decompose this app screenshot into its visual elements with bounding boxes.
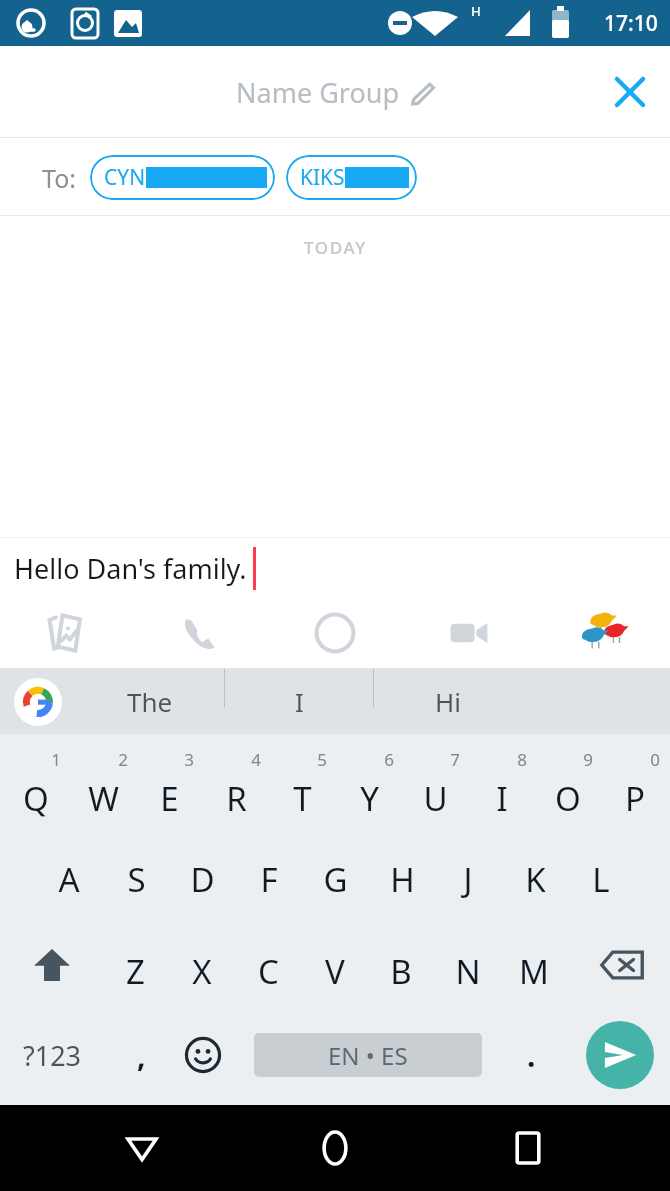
staticText: I — [496, 776, 508, 821]
staticText: X — [192, 949, 212, 994]
button[interactable]: Hello Dan's family. — [0, 538, 670, 598]
button[interactable] — [502, 827, 568, 919]
button[interactable] — [368, 919, 434, 1011]
staticText: C — [258, 949, 279, 994]
button[interactable] — [336, 734, 402, 827]
button[interactable] — [435, 827, 501, 919]
staticText: B — [390, 949, 412, 994]
staticText: 8 — [517, 748, 527, 771]
button[interactable]: Stickers — [536, 598, 670, 668]
button[interactable] — [235, 919, 301, 1011]
staticText: F — [260, 857, 278, 902]
staticText: Q — [23, 776, 49, 821]
button[interactable] — [203, 734, 269, 827]
staticText: 9 — [583, 748, 593, 771]
staticText: U — [423, 776, 448, 821]
button[interactable] — [302, 827, 368, 919]
button[interactable]: Video — [402, 598, 536, 668]
button[interactable] — [469, 734, 535, 827]
button[interactable]: Call — [134, 598, 268, 668]
staticText: E — [160, 776, 179, 821]
button[interactable]: Backspace — [584, 919, 660, 1011]
staticText: TODAY — [304, 236, 367, 259]
button[interactable] — [302, 919, 368, 1011]
staticText: 17:10 — [604, 9, 658, 38]
staticText: ?123 — [23, 1037, 82, 1074]
button[interactable] — [501, 919, 567, 1011]
staticText: 7 — [450, 748, 460, 771]
staticText: Hi — [435, 684, 461, 719]
staticText: T — [293, 776, 312, 821]
staticText: The — [127, 684, 173, 719]
staticText: KIKS — [300, 163, 345, 192]
staticText: R — [226, 776, 247, 821]
button[interactable]: KIKS — [286, 155, 417, 200]
button[interactable] — [402, 734, 468, 827]
button[interactable] — [36, 827, 102, 919]
button[interactable] — [169, 919, 235, 1011]
button[interactable] — [103, 827, 169, 919]
button[interactable]: Back — [110, 1116, 174, 1180]
button[interactable] — [369, 827, 435, 919]
staticText: S — [127, 857, 146, 902]
button[interactable]: Shift — [8, 919, 96, 1011]
staticText: Y — [360, 776, 379, 821]
staticText: G — [323, 857, 348, 902]
button[interactable]: I — [225, 669, 373, 734]
staticText: 6 — [384, 748, 394, 771]
staticText: , — [137, 1035, 146, 1076]
staticText: 3 — [184, 748, 194, 771]
staticText: N — [455, 949, 481, 994]
staticText: 1 — [51, 748, 61, 771]
button[interactable]: Close — [604, 66, 656, 118]
button[interactable]: CYN — [90, 155, 275, 200]
button[interactable]: . — [500, 1011, 562, 1099]
button[interactable]: Recents — [496, 1116, 560, 1180]
staticText: W — [88, 776, 119, 821]
staticText: To: — [42, 161, 76, 195]
staticText: M — [519, 949, 549, 994]
button[interactable] — [568, 827, 634, 919]
staticText: L — [592, 857, 610, 902]
button[interactable] — [102, 919, 168, 1011]
button[interactable] — [70, 734, 136, 827]
button[interactable]: EN • ES — [254, 1033, 482, 1077]
button[interactable] — [169, 827, 235, 919]
staticText: 0 — [650, 748, 660, 771]
staticText: A — [58, 857, 80, 902]
button[interactable]: , — [110, 1011, 172, 1099]
staticText: 5 — [317, 748, 327, 771]
staticText: K — [525, 857, 546, 902]
staticText: P — [625, 776, 645, 821]
staticText: Z — [126, 949, 145, 994]
button[interactable]: Gallery — [0, 598, 134, 668]
button[interactable]: Hi — [374, 669, 522, 734]
staticText: I — [295, 684, 304, 719]
button[interactable]: The — [76, 669, 224, 734]
button[interactable]: Google — [14, 678, 62, 726]
button[interactable]: Send — [586, 1021, 654, 1089]
staticText: . — [527, 1035, 536, 1076]
staticText: 4 — [251, 748, 261, 771]
button[interactable] — [602, 734, 668, 827]
staticText: Hello Dan's family. — [14, 550, 247, 587]
staticText: EN • ES — [328, 1039, 408, 1072]
staticText: D — [190, 857, 215, 902]
button[interactable]: Name Group — [230, 68, 441, 117]
button[interactable] — [136, 734, 202, 827]
staticText: O — [555, 776, 581, 821]
button[interactable] — [435, 919, 501, 1011]
button[interactable] — [535, 734, 601, 827]
staticText: Name Group — [236, 74, 400, 111]
button[interactable] — [236, 827, 302, 919]
button[interactable] — [269, 734, 335, 827]
staticText: CYN — [104, 163, 146, 192]
button[interactable]: Record — [268, 598, 402, 668]
staticText: J — [463, 857, 473, 902]
button[interactable]: Emoji — [172, 1011, 234, 1099]
staticText: H — [471, 2, 481, 20]
button[interactable]: ?123 — [2, 1011, 102, 1099]
button[interactable] — [3, 734, 69, 827]
button[interactable]: Home — [303, 1116, 367, 1180]
staticText: V — [325, 949, 345, 994]
